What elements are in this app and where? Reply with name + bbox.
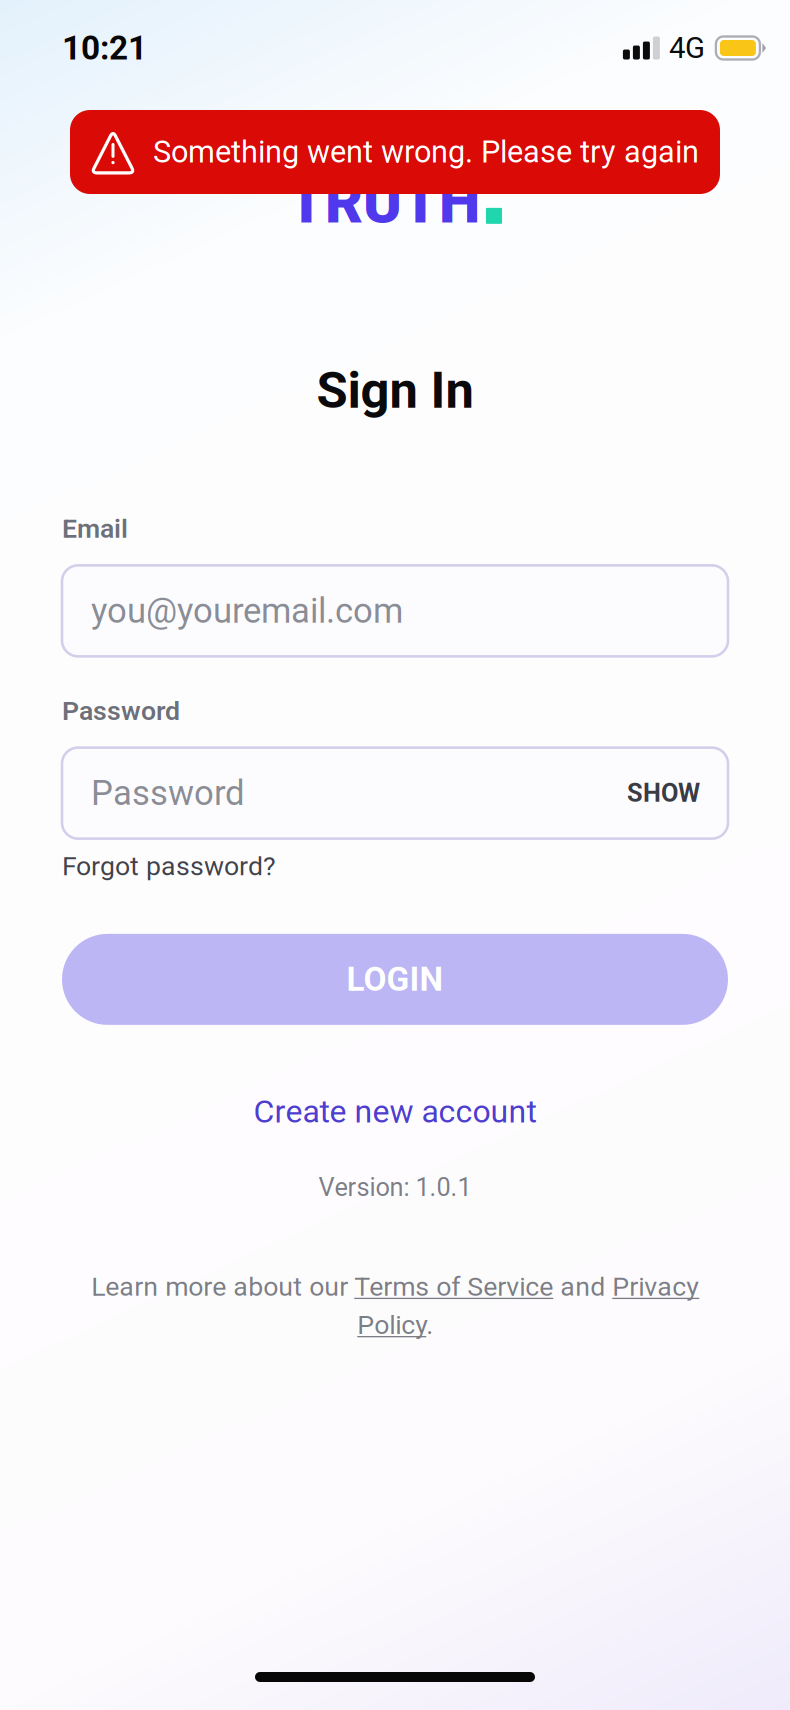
staticText: Forgot password? [62,851,276,882]
button[interactable]: Forgot password? [62,841,276,892]
staticText: Email [62,513,128,544]
button[interactable]: LOGIN [62,934,728,1025]
staticText: Password [62,695,180,727]
staticText: Learn more about our Terms of Service an… [91,1271,699,1341]
staticText: 4G [669,31,705,65]
staticText: 10:21 [62,28,147,68]
staticText: TRUTH [288,168,480,237]
staticText: Create new account [253,1093,536,1130]
staticText: you@youremail.com [91,591,403,631]
button[interactable]: SHOW [605,756,700,830]
button[interactable]: Create new account [0,1081,790,1142]
staticText: Sign In [316,361,473,420]
staticText: Version: 1.0.1 [318,1172,471,1202]
staticText: LOGIN [346,960,443,999]
staticText: SHOW [627,778,700,808]
staticText: Password [91,773,245,813]
staticText: Something went wrong. Please try again [153,134,699,170]
